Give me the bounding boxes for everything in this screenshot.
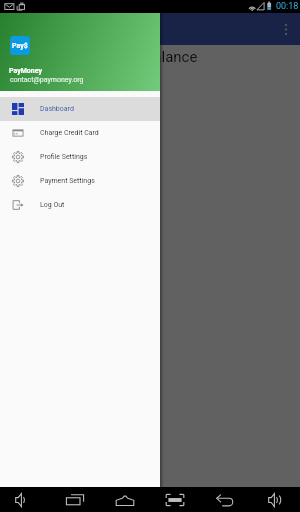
button[interactable]: Home (100, 487, 150, 512)
staticText: Balance (144, 48, 198, 66)
button[interactable]: Volume up (250, 487, 300, 512)
staticText: Log Out (40, 201, 65, 209)
staticText: contact@paymoney.org (10, 76, 84, 84)
button[interactable]: Charge Credit Card (0, 121, 160, 145)
button[interactable]: Back (200, 487, 250, 512)
staticText: Dashboard (48, 22, 107, 36)
staticText: Pay$ (12, 42, 28, 50)
staticText: Profile Settings (40, 153, 88, 161)
button[interactable]: Dashboard (0, 97, 160, 121)
staticText: Dashboard (40, 105, 74, 113)
button[interactable]: Screenshot (150, 487, 200, 512)
button[interactable]: Volume down (0, 487, 43, 512)
staticText: 00:18 (276, 1, 299, 12)
button[interactable]: Profile Settings (0, 145, 160, 169)
staticText: PayMoney (9, 67, 42, 75)
staticText: Payment Settings (40, 177, 95, 185)
button[interactable]: Recent apps (50, 487, 100, 512)
button[interactable]: Payment Settings (0, 169, 160, 193)
button[interactable]: Log Out (0, 193, 160, 217)
button[interactable]: More options (272, 13, 300, 45)
staticText: Charge Credit Card (40, 129, 99, 137)
